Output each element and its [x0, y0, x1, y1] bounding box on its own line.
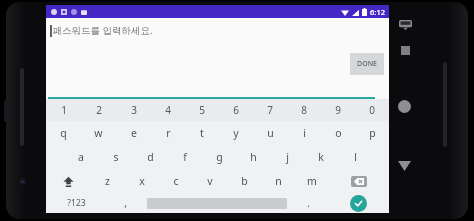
button[interactable]: 1: [46, 99, 81, 121]
button[interactable]: 9: [321, 99, 355, 121]
button[interactable]: w: [81, 121, 116, 145]
staticText: u: [267, 126, 274, 140]
staticText: ?123: [67, 197, 86, 209]
button[interactable]: 5: [185, 99, 219, 121]
staticText: o: [335, 126, 342, 140]
button[interactable]: 3: [116, 99, 151, 121]
button[interactable]: g: [202, 145, 236, 169]
staticText: n: [275, 174, 282, 188]
button[interactable]: a: [63, 145, 98, 169]
staticText: ,: [124, 196, 127, 210]
button[interactable]: 7: [253, 99, 287, 121]
button[interactable]: DONE: [350, 53, 384, 75]
staticText: 0: [369, 103, 375, 117]
staticText: j: [286, 150, 289, 164]
button[interactable]: h: [236, 145, 270, 169]
staticText: p: [369, 126, 376, 140]
button[interactable]: q: [46, 121, 81, 145]
staticText: 패스워드를 입력하세요.: [52, 24, 153, 37]
staticText: g: [216, 150, 223, 164]
button[interactable]: o: [321, 121, 355, 145]
staticText: h: [250, 150, 257, 164]
button[interactable]: Home: [398, 100, 411, 113]
staticText: 6:12: [370, 7, 385, 17]
button[interactable]: 6: [219, 99, 253, 121]
staticText: b: [241, 174, 248, 188]
button[interactable]: l: [338, 145, 372, 169]
button[interactable]: Space: [144, 193, 290, 213]
staticText: d: [147, 150, 154, 164]
staticText: 7: [267, 103, 273, 117]
staticText: l: [354, 150, 357, 164]
staticText: y: [233, 126, 239, 140]
staticText: m: [307, 174, 317, 188]
button[interactable]: Comma: [107, 193, 144, 213]
staticText: s: [113, 150, 119, 164]
button[interactable]: Enter: [327, 193, 389, 213]
button[interactable]: j: [270, 145, 304, 169]
staticText: c: [173, 174, 179, 188]
button[interactable]: t: [185, 121, 219, 145]
button[interactable]: Period: [290, 193, 327, 213]
button[interactable]: d: [133, 145, 168, 169]
button[interactable]: y: [219, 121, 253, 145]
staticText: q: [60, 126, 67, 140]
button[interactable]: z: [90, 169, 125, 193]
staticText: 8: [301, 103, 307, 117]
staticText: v: [207, 174, 213, 188]
button[interactable]: Back: [398, 161, 411, 171]
staticText: x: [139, 174, 145, 188]
button[interactable]: Hide keyboard: [399, 20, 412, 30]
staticText: i: [303, 126, 306, 140]
staticText: w: [94, 126, 103, 140]
staticText: e: [131, 126, 137, 140]
staticText: 4: [165, 103, 171, 117]
button[interactable]: i: [287, 121, 321, 145]
button[interactable]: n: [261, 169, 295, 193]
button[interactable]: x: [125, 169, 159, 193]
button[interactable]: u: [253, 121, 287, 145]
button[interactable]: k: [304, 145, 338, 169]
staticText: z: [105, 174, 110, 188]
button[interactable]: v: [193, 169, 227, 193]
staticText: t: [200, 126, 204, 140]
button[interactable]: Backspace: [329, 169, 389, 193]
button[interactable]: f: [168, 145, 202, 169]
staticText: a: [78, 150, 84, 164]
button[interactable]: e: [116, 121, 151, 145]
staticText: 5: [199, 103, 205, 117]
staticText: 2: [96, 103, 102, 117]
button[interactable]: c: [159, 169, 193, 193]
button[interactable]: 0: [355, 99, 389, 121]
staticText: k: [318, 150, 324, 164]
staticText: r: [166, 126, 171, 140]
button[interactable]: ?123: [46, 193, 107, 213]
staticText: 1: [61, 103, 67, 117]
staticText: f: [183, 150, 187, 164]
staticText: DONE: [357, 59, 377, 69]
button[interactable]: Shift: [46, 169, 90, 193]
button[interactable]: s: [98, 145, 133, 169]
button[interactable]: b: [227, 169, 261, 193]
staticText: 6: [233, 103, 239, 117]
staticText: 9: [335, 103, 341, 117]
button[interactable]: 8: [287, 99, 321, 121]
button[interactable]: 4: [151, 99, 185, 121]
button[interactable]: 2: [81, 99, 116, 121]
staticText: 3: [131, 103, 137, 117]
button[interactable]: r: [151, 121, 185, 145]
staticText: .: [307, 196, 310, 210]
button[interactable]: m: [295, 169, 329, 193]
button[interactable]: p: [355, 121, 389, 145]
